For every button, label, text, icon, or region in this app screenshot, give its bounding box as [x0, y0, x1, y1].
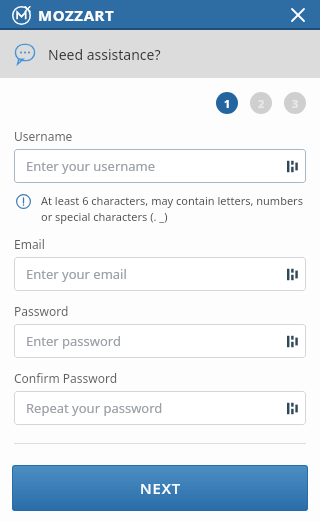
- button[interactable]: 1: [216, 92, 238, 114]
- staticText: Enter password: [26, 332, 121, 350]
- staticText: Need assistance?: [48, 45, 161, 64]
- button[interactable]: Enter your email: [14, 257, 306, 291]
- button[interactable]: Need assistance?: [0, 30, 320, 78]
- staticText: 1: [224, 96, 231, 111]
- staticText: Enter your username: [26, 157, 156, 175]
- staticText: Email: [14, 236, 45, 252]
- button[interactable]: 2: [250, 92, 272, 114]
- staticText: Enter your email: [26, 265, 127, 283]
- button[interactable]: Close: [284, 1, 312, 29]
- button[interactable]: Repeat your password: [14, 391, 306, 425]
- button[interactable]: Enter your username: [14, 149, 306, 183]
- staticText: Repeat your password: [26, 399, 163, 417]
- staticText: NEXT: [140, 478, 181, 498]
- staticText: 3: [292, 96, 299, 111]
- button[interactable]: 3: [284, 92, 306, 114]
- staticText: At least 6 characters, may contain lette…: [41, 193, 306, 224]
- button[interactable]: NEXT: [12, 465, 308, 511]
- staticText: MOZZART: [38, 5, 115, 25]
- button[interactable]: Enter password: [14, 324, 306, 358]
- staticText: Confirm Password: [14, 370, 118, 386]
- staticText: Username: [14, 128, 73, 144]
- staticText: Password: [14, 303, 69, 319]
- staticText: 2: [258, 96, 265, 111]
